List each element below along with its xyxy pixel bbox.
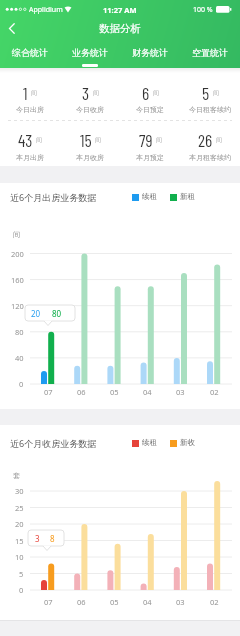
staticText: 11:27 AM — [103, 5, 137, 15]
staticText: 06 — [77, 387, 86, 397]
staticText: Applidium — [29, 5, 63, 15]
staticText: 套 — [13, 471, 20, 480]
staticText: 间 — [216, 136, 222, 144]
staticText: 03 — [176, 387, 185, 397]
staticText: 本月预定 — [136, 153, 164, 162]
staticText: 数据分析 — [99, 22, 141, 35]
staticText: 07 — [44, 597, 53, 607]
staticText: 财务统计 — [132, 47, 168, 58]
staticText: 业务统计 — [72, 47, 108, 58]
staticText: 本月出房 — [16, 153, 44, 162]
staticText: 间 — [213, 89, 219, 97]
staticText: 20 — [15, 519, 24, 529]
staticText: 间 — [95, 136, 101, 144]
staticText: 25 — [15, 503, 24, 513]
staticText: 26 — [198, 129, 213, 149]
staticText: 40 — [15, 353, 24, 363]
staticText: 近6个月出房业务数据 — [10, 191, 97, 203]
staticText: 200 — [11, 249, 24, 259]
button[interactable]: 15 — [60, 129, 120, 149]
staticText: 间 — [93, 89, 99, 97]
staticText: 本月租客续约 — [189, 153, 231, 162]
button[interactable]: 3 — [60, 82, 120, 102]
button[interactable]: 43 — [0, 129, 60, 149]
staticText: 5 — [202, 82, 210, 102]
staticText: 今日收房 — [76, 105, 104, 114]
staticText: 03 — [176, 597, 185, 607]
staticText: 间 — [153, 89, 159, 97]
button[interactable] — [8, 23, 16, 34]
button[interactable]: 1 — [0, 82, 60, 102]
staticText: 20 — [31, 308, 41, 319]
staticText: 79 — [139, 129, 153, 149]
staticText: 3 — [35, 533, 40, 544]
staticText: 今日租客续约 — [189, 105, 231, 114]
staticText: 间 — [156, 136, 162, 144]
staticText: 15 — [80, 129, 92, 149]
button[interactable]: 26 — [180, 129, 240, 149]
staticText: 0 — [19, 379, 24, 389]
staticText: 6 — [142, 82, 150, 102]
staticText: 今日预定 — [136, 105, 164, 114]
staticText: 120 — [11, 301, 24, 311]
staticText: 02 — [210, 387, 219, 397]
staticText: 续租 — [142, 438, 157, 447]
staticText: 30 — [15, 486, 24, 496]
staticText: 100 % — [193, 5, 213, 15]
button[interactable]: 79 — [120, 129, 180, 149]
staticText: 06 — [77, 597, 86, 607]
staticText: 80 — [52, 308, 62, 319]
staticText: 空置统计 — [192, 47, 228, 58]
staticText: 间 — [13, 230, 20, 239]
staticText: 160 — [11, 275, 24, 285]
button[interactable]: 业务统计 — [60, 42, 120, 62]
staticText: 10 — [15, 552, 24, 562]
staticText: 15 — [15, 536, 24, 546]
button[interactable]: 空置统计 — [180, 42, 240, 62]
staticText: 新收 — [180, 438, 195, 447]
staticText: 1 — [23, 82, 28, 102]
staticText: 5 — [19, 569, 24, 579]
button[interactable]: 财务统计 — [120, 42, 180, 62]
staticText: 05 — [110, 597, 119, 607]
staticText: 8 — [50, 533, 55, 544]
staticText: 04 — [143, 387, 152, 397]
staticText: 0 — [19, 585, 24, 595]
staticText: 本月收房 — [76, 153, 104, 162]
staticText: 近6个月收房业务数据 — [10, 437, 97, 449]
staticText: 3 — [82, 82, 90, 102]
staticText: 间 — [31, 89, 37, 97]
staticText: 02 — [210, 597, 219, 607]
button[interactable]: 综合统计 — [0, 42, 60, 62]
staticText: 43 — [18, 129, 33, 149]
staticText: 07 — [44, 387, 53, 397]
staticText: 续租 — [142, 192, 157, 201]
staticText: 间 — [36, 136, 42, 144]
button[interactable]: 5 — [180, 82, 240, 102]
staticText: 新租 — [180, 192, 195, 201]
staticText: 80 — [15, 327, 24, 337]
button[interactable]: 6 — [120, 82, 180, 102]
staticText: 05 — [110, 387, 119, 397]
staticText: 今日出房 — [16, 105, 44, 114]
staticText: 综合统计 — [12, 47, 48, 58]
staticText: 04 — [143, 597, 152, 607]
